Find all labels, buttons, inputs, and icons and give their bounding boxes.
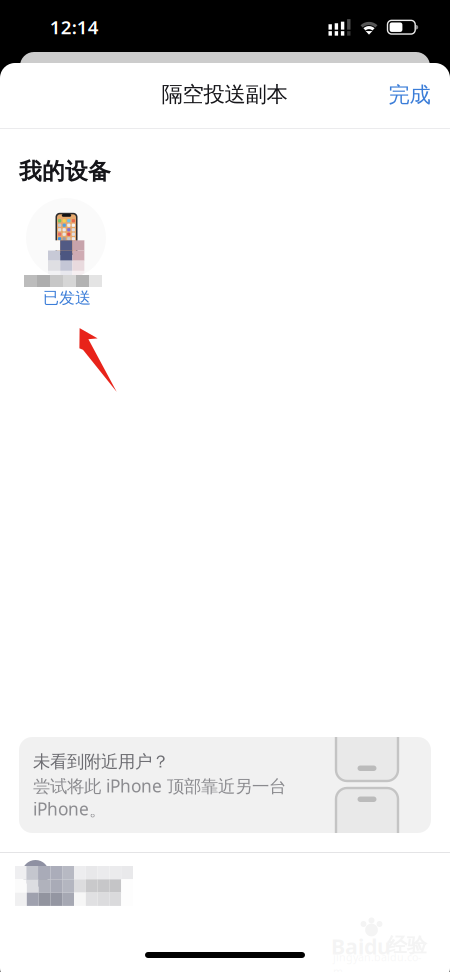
staticText: jingyan.baidu.com	[333, 950, 421, 972]
staticText: 完成	[388, 82, 430, 108]
staticText: 已发送	[43, 288, 91, 308]
staticText: 未看到附近用户？	[33, 751, 169, 772]
button[interactable]: 完成	[377, 73, 441, 117]
staticText: 隔空投送副本	[161, 81, 287, 108]
button[interactable]: 已发送	[20, 198, 112, 312]
button[interactable]	[11, 859, 135, 915]
staticText: 我的设备	[19, 158, 111, 185]
staticText: 12:14	[50, 15, 99, 39]
staticText: 经验	[387, 933, 427, 958]
staticText: Baidu	[331, 932, 391, 960]
staticText: 尝试将此 iPhone 顶部靠近另一台 iPhone。	[33, 774, 286, 820]
